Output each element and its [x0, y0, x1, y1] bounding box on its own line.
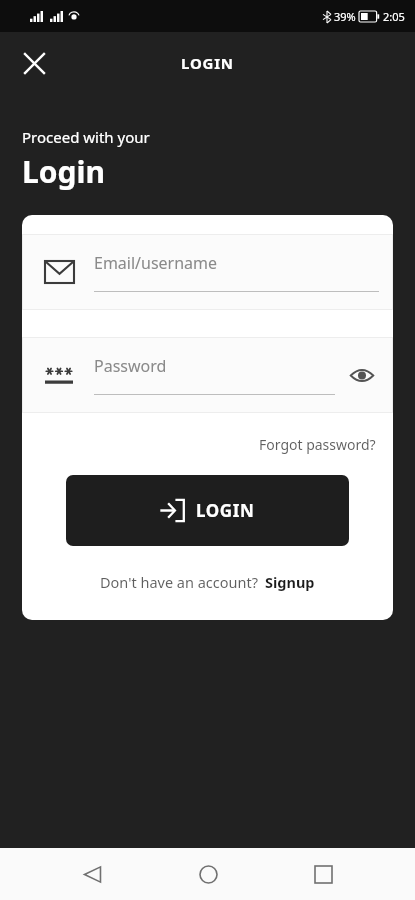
staticText: Forgot password? — [259, 435, 376, 454]
button[interactable]: Don't have an account? — [96, 570, 319, 594]
staticText: LOGIN — [181, 53, 234, 73]
button[interactable]: Forgot password? — [256, 432, 379, 457]
staticText: Password — [94, 355, 167, 377]
staticText: Login — [22, 151, 105, 192]
button[interactable]: Recent apps — [299, 850, 347, 898]
button[interactable]: LOGIN — [66, 475, 349, 546]
button[interactable]: Email/username — [22, 234, 393, 310]
staticText: Signup — [265, 572, 315, 592]
staticText: 39% — [334, 9, 356, 24]
staticText: Proceed with your — [22, 127, 150, 147]
button[interactable]: Home — [184, 850, 232, 898]
staticText: Email/username — [94, 252, 218, 274]
button[interactable]: Password — [22, 337, 393, 413]
staticText: LOGIN — [196, 499, 255, 522]
staticText: 2:05 — [383, 9, 405, 24]
button[interactable]: Show password — [345, 358, 379, 392]
button[interactable]: Close — [12, 41, 56, 85]
button[interactable]: Back — [68, 850, 116, 898]
staticText: Don't have an account? — [100, 572, 258, 592]
